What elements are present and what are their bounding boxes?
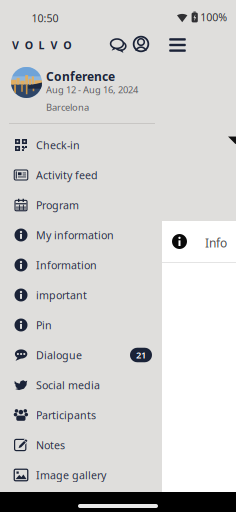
button[interactable]: Image gallery — [0, 460, 163, 490]
staticText: Info — [205, 235, 227, 251]
staticText: Barcelona — [46, 101, 89, 113]
staticText: 100% — [200, 10, 227, 24]
staticText: Activity feed — [36, 168, 98, 182]
button[interactable]: Check-in — [0, 130, 163, 160]
staticText: Dialogue — [36, 348, 82, 362]
staticText: Participants — [36, 408, 96, 422]
staticText: L — [39, 38, 45, 52]
staticText: Notes — [36, 438, 65, 452]
staticText: important — [36, 288, 87, 302]
staticText: O — [25, 38, 33, 52]
button[interactable]: Program — [0, 190, 163, 220]
button[interactable]: Information — [0, 250, 163, 280]
staticText: Aug 12 - Aug 16, 2024 — [46, 83, 138, 96]
staticText: Program — [36, 198, 79, 212]
button[interactable]: Social media — [0, 370, 163, 400]
button[interactable]: Dialogue — [0, 340, 163, 370]
button[interactable]: My information — [0, 220, 163, 250]
button[interactable]: Activity feed — [0, 160, 163, 190]
staticText: My information — [36, 228, 114, 242]
button[interactable]: Menu — [169, 38, 186, 52]
button[interactable]: Messages — [109, 36, 129, 56]
staticText: Check-in — [36, 138, 80, 152]
staticText: Social media — [36, 378, 100, 392]
staticText: Image gallery — [36, 468, 106, 482]
button[interactable]: Participants — [0, 400, 163, 430]
button[interactable]: Notes — [0, 430, 163, 460]
staticText: Pin — [36, 318, 52, 332]
staticText: Information — [36, 258, 97, 272]
staticText: V — [50, 38, 57, 52]
button[interactable]: Pin — [0, 310, 163, 340]
button[interactable]: important — [0, 280, 163, 310]
staticText: O — [63, 38, 71, 52]
button[interactable]: Conference — [0, 59, 163, 115]
staticText: 10:50 — [31, 11, 58, 25]
staticText: 21 — [136, 349, 146, 361]
staticText: V — [12, 38, 19, 52]
staticText: Conference — [46, 68, 115, 84]
button[interactable]: Account — [131, 34, 151, 54]
